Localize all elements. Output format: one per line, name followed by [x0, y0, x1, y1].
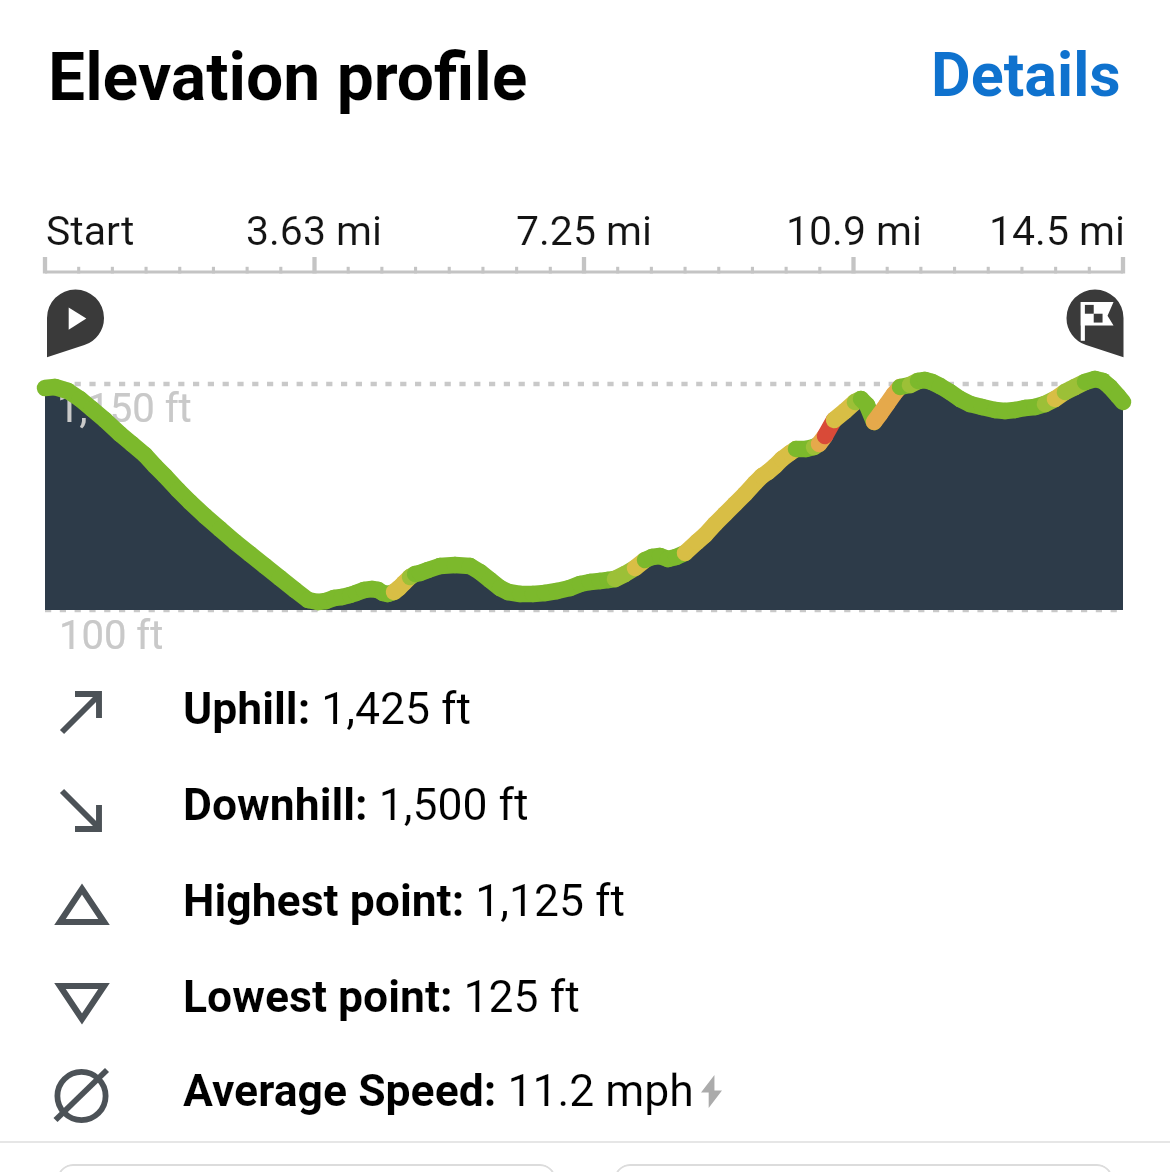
- button[interactable]: Lowest point:: [183, 971, 580, 1023]
- button[interactable]: Highest point:: [183, 875, 626, 927]
- staticText: 10.9 mi: [786, 207, 923, 255]
- staticText: 1,150 ft: [57, 385, 192, 432]
- button[interactable]: Secondary action: [614, 1164, 1113, 1172]
- staticText: 3.63 mi: [246, 207, 383, 255]
- staticText: 14.5 mi: [989, 207, 1126, 255]
- staticText: Start: [46, 207, 135, 255]
- button[interactable]: Uphill:: [183, 683, 472, 735]
- staticText: Details: [931, 39, 1121, 110]
- staticText: Lowest point: 125 ft: [183, 971, 580, 1023]
- staticText: 100 ft: [59, 612, 164, 659]
- button[interactable]: Average Speed:: [183, 1065, 722, 1117]
- staticText: Downhill: 1,500 ft: [183, 779, 529, 831]
- staticText: Highest point: 1,125 ft: [183, 875, 626, 927]
- staticText: Average Speed: 11.2 mph: [183, 1065, 694, 1117]
- button[interactable]: Primary action: [57, 1164, 556, 1172]
- button[interactable]: Details: [931, 39, 1121, 110]
- staticText: Uphill: 1,425 ft: [183, 683, 472, 735]
- button[interactable]: Downhill:: [183, 779, 529, 831]
- staticText: 7.25 mi: [516, 207, 653, 255]
- staticText: Elevation profile: [48, 39, 528, 116]
